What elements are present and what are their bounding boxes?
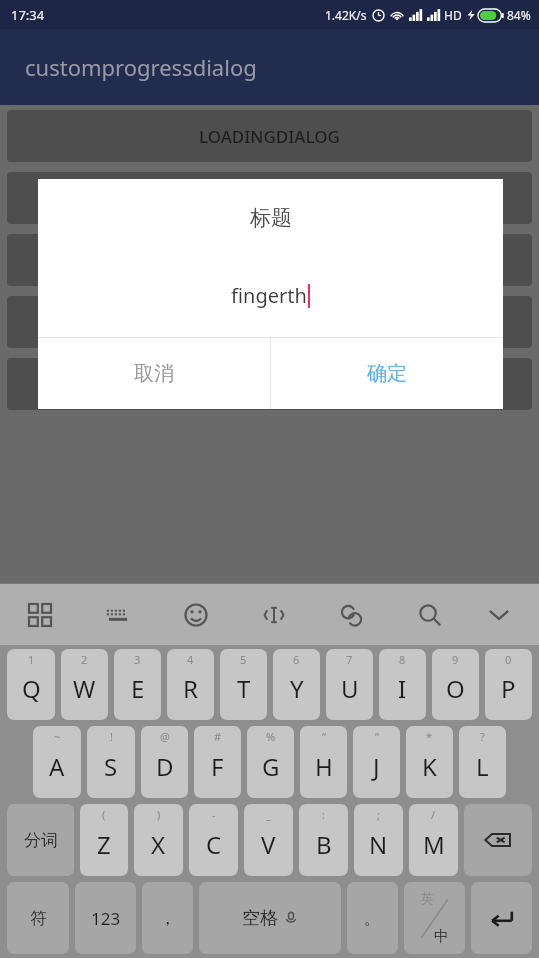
staticText: @ [160,729,170,744]
button[interactable]: 9 [432,649,479,720]
staticText: ， [159,908,176,929]
staticText: N [369,828,388,861]
staticText: 84% [507,7,531,23]
button[interactable]: Keyboard [100,597,136,633]
button[interactable]: 取消 [38,338,270,409]
button[interactable]: 7 [326,649,373,720]
staticText: K [422,750,437,783]
staticText: 1 [28,652,35,667]
staticText: R [183,672,198,705]
staticText: D [156,750,174,783]
button[interactable]: 1 [7,649,55,720]
button[interactable] [7,172,532,224]
button[interactable] [7,234,532,286]
staticText: ( [102,807,106,822]
button[interactable]: ; [354,804,403,876]
staticText: H [315,750,333,783]
button[interactable]: Emoji [178,597,214,633]
button[interactable]: ! [87,726,135,798]
staticText: 123 [91,907,121,930]
staticText: I [398,672,407,705]
button[interactable]: 5 [220,649,267,720]
staticText: 标题 [250,205,292,231]
button[interactable]: 8 [379,649,426,720]
button[interactable]: ~ [33,726,81,798]
button[interactable]: Clipboard [334,597,370,633]
button[interactable] [7,296,532,348]
staticText: B [316,828,332,861]
staticText: : [322,807,325,822]
staticText: 分词 [24,830,58,851]
button[interactable]: 符 [7,882,69,954]
staticText: 8 [399,652,406,667]
button[interactable]: 4 [167,649,214,720]
staticText: ~ [54,729,61,744]
button[interactable]: Apps [22,597,58,633]
staticText: ” [375,729,379,744]
staticText: “ [322,729,326,744]
button[interactable]: / [409,804,458,876]
staticText: 4 [187,652,194,667]
staticText: 3 [134,652,141,667]
staticText: 9 [452,652,459,667]
staticText: LOADINGDIALOG [199,125,340,148]
button[interactable]: ) [134,804,183,876]
button[interactable]: 0 [485,649,532,720]
staticText: % [266,729,276,744]
staticText: E [131,672,145,705]
staticText: ! [110,729,113,744]
staticText: * [426,729,433,744]
staticText: - [212,807,216,822]
button[interactable]: # [194,726,241,798]
staticText: ; [377,807,380,822]
staticText: customprogressdialog [25,52,257,82]
staticText: fingerth [231,282,307,309]
staticText: S [104,750,118,783]
button[interactable]: Backspace [464,804,532,876]
staticText: HD [444,7,462,23]
button[interactable]: ( [80,804,128,876]
button[interactable]: 确定 [271,338,503,409]
button[interactable]: _ [244,804,293,876]
staticText: # [214,729,222,744]
button[interactable]: 2 [61,649,108,720]
staticText: P [501,672,516,705]
staticText: M [423,828,445,861]
button[interactable]: * [406,726,453,798]
button[interactable]: ? [459,726,506,798]
staticText: 符 [30,908,47,929]
button[interactable]: : [299,804,348,876]
staticText: ) [157,807,161,822]
button[interactable]: Search [412,597,448,633]
button[interactable]: 空格 [199,882,341,954]
button[interactable]: Hide keyboard [481,597,517,633]
staticText: Z [97,828,111,861]
button[interactable]: 英 [404,882,465,954]
staticText: 。 [364,908,381,929]
button[interactable]: 分词 [7,804,74,876]
staticText: 取消 [134,361,174,386]
button[interactable]: Enter [471,882,532,954]
button[interactable]: “ [300,726,347,798]
staticText: U [341,672,359,705]
staticText: C [206,828,222,861]
button[interactable]: ” [353,726,400,798]
button[interactable]: LOADINGDIALOG [7,110,532,162]
button[interactable] [7,358,532,410]
button[interactable]: % [247,726,294,798]
staticText: 英 [421,890,434,906]
button[interactable]: Cursor [256,597,292,633]
button[interactable]: - [189,804,238,876]
button[interactable]: 3 [114,649,161,720]
staticText: 5 [240,652,247,667]
staticText: 空格 [242,907,278,930]
button[interactable]: 6 [273,649,320,720]
button[interactable]: ， [142,882,193,954]
staticText: 7 [346,652,353,667]
staticText: F [211,750,224,783]
button[interactable]: @ [141,726,188,798]
staticText: T [237,672,251,705]
button[interactable]: 。 [347,882,398,954]
staticText: 0 [505,652,512,667]
button[interactable]: 123 [75,882,136,954]
